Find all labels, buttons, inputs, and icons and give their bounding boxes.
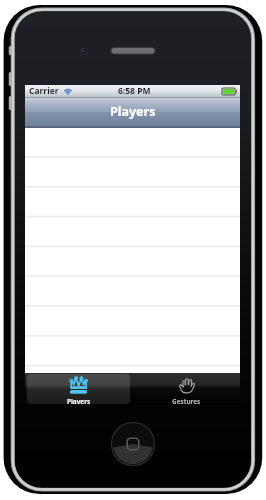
button[interactable] bbox=[25, 308, 240, 338]
staticText: Carrier bbox=[29, 85, 59, 97]
button[interactable]: Players bbox=[27, 374, 130, 404]
button[interactable] bbox=[25, 188, 240, 218]
button[interactable] bbox=[25, 248, 240, 278]
staticText: Players bbox=[67, 397, 91, 404]
button[interactable]: Gestures bbox=[134, 374, 238, 404]
staticText: 6:58 PM bbox=[118, 85, 151, 97]
button[interactable] bbox=[25, 218, 240, 248]
staticText: Gestures bbox=[172, 397, 201, 404]
staticText: Players bbox=[110, 103, 156, 120]
button[interactable] bbox=[25, 278, 240, 308]
button[interactable] bbox=[25, 338, 240, 368]
button[interactable] bbox=[25, 128, 240, 158]
button[interactable] bbox=[25, 158, 240, 188]
